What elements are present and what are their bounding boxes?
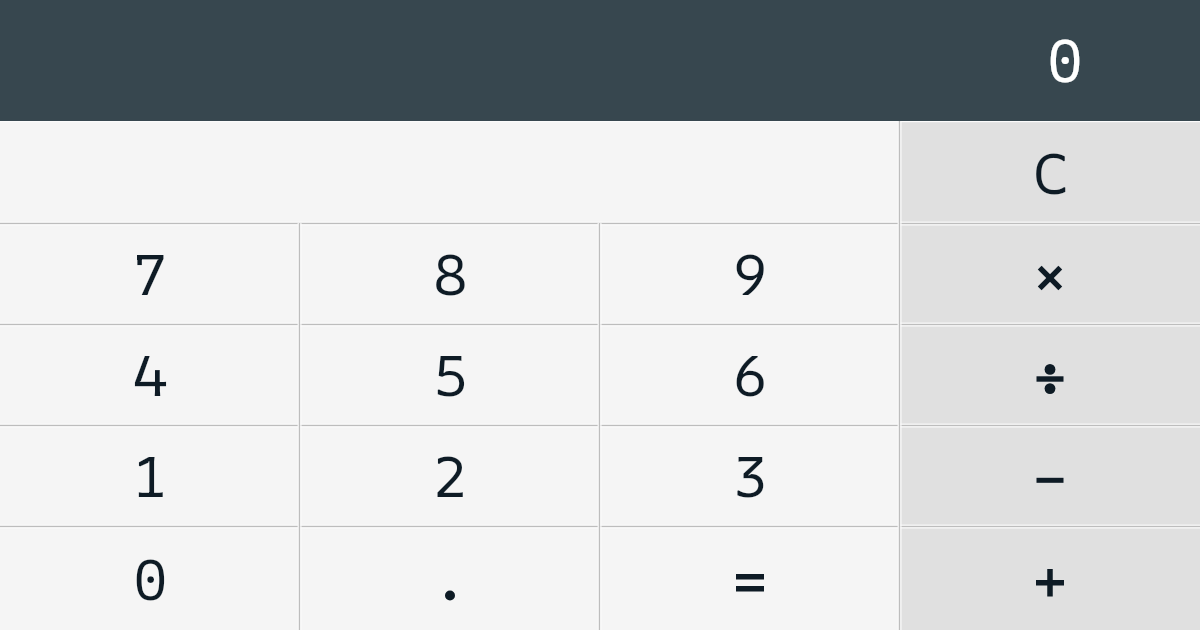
button[interactable]: Clear xyxy=(900,121,1200,223)
staticText: 9 xyxy=(733,234,768,313)
staticText: 7 xyxy=(133,234,167,313)
button[interactable]: 0 xyxy=(0,526,300,630)
button[interactable]: Add xyxy=(900,526,1200,630)
button[interactable]: 8 xyxy=(300,223,600,324)
button[interactable]: 5 xyxy=(300,324,600,425)
button[interactable]: 2 xyxy=(300,425,600,526)
staticText: 0 xyxy=(133,539,168,618)
button[interactable]: 7 xyxy=(0,223,300,324)
button[interactable]: Divide xyxy=(900,324,1200,425)
staticText: C xyxy=(1032,133,1068,212)
button[interactable]: 3 xyxy=(600,425,900,526)
button[interactable]: 4 xyxy=(0,324,300,425)
button[interactable]: Subtract xyxy=(900,425,1200,526)
button[interactable]: Decimal point xyxy=(300,526,600,630)
button[interactable]: 1 xyxy=(0,425,300,526)
staticText: 5 xyxy=(433,335,468,414)
staticText: 4 xyxy=(133,335,168,414)
staticText: 6 xyxy=(733,335,768,414)
other: Result display, 0 xyxy=(0,0,1200,121)
staticText: 3 xyxy=(733,436,768,515)
button[interactable]: Multiply xyxy=(900,223,1200,324)
staticText: 0 xyxy=(1047,18,1083,100)
button[interactable]: Equals xyxy=(600,526,900,630)
button[interactable]: 6 xyxy=(600,324,900,425)
staticText: 2 xyxy=(433,436,468,515)
staticText: 1 xyxy=(133,436,168,515)
staticText: 8 xyxy=(433,234,468,313)
button[interactable]: 9 xyxy=(600,223,900,324)
